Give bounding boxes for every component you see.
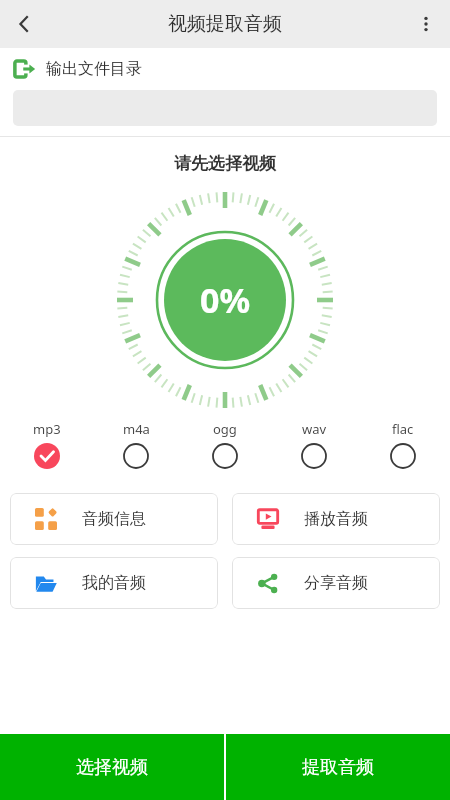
staticText: 输出文件目录 [46, 59, 142, 79]
staticText: 提取音频 [302, 756, 374, 779]
button[interactable]: 播放音频 [232, 493, 440, 545]
staticText: 视频提取音频 [168, 12, 282, 36]
button[interactable]: 音频信息 [10, 493, 218, 545]
button[interactable]: 提取音频 [226, 734, 450, 800]
button[interactable]: m4a [105, 420, 167, 469]
button[interactable]: flac [372, 420, 434, 469]
button[interactable]: Back [0, 0, 48, 48]
staticText: wav [302, 420, 327, 438]
button[interactable]: 我的音频 [10, 557, 218, 609]
staticText: 播放音频 [304, 509, 368, 529]
staticText: flac [392, 420, 414, 438]
button[interactable]: mp3 [16, 420, 78, 469]
button[interactable]: More options [402, 0, 450, 48]
button[interactable]: wav [283, 420, 345, 469]
staticText: mp3 [33, 420, 61, 438]
staticText: 分享音频 [304, 573, 368, 593]
button[interactable]: 分享音频 [232, 557, 440, 609]
staticText: 请先选择视频 [0, 153, 450, 174]
staticText: 音频信息 [82, 509, 146, 529]
staticText: 选择视频 [76, 756, 148, 779]
button[interactable]: 选择视频 [0, 734, 224, 800]
staticText: m4a [123, 420, 150, 438]
button[interactable]: ogg [194, 420, 256, 469]
button[interactable]: 输出文件目录 [0, 48, 450, 126]
staticText: 0% [200, 277, 251, 323]
staticText: 我的音频 [82, 573, 146, 593]
staticText: ogg [213, 420, 237, 438]
